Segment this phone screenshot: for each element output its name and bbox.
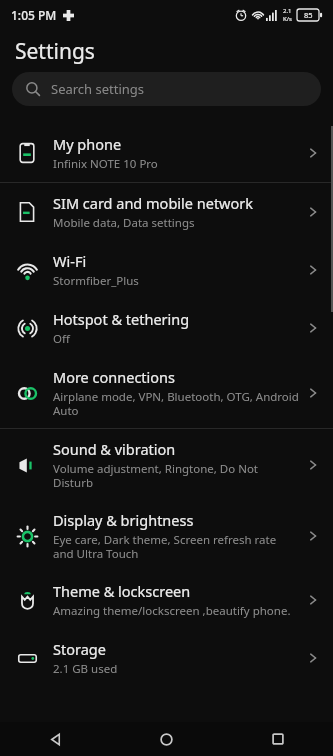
staticText: Hotspot & tethering (53, 309, 190, 329)
staticText: Wi-Fi (53, 251, 87, 271)
button[interactable]: Sound & vibration (0, 429, 333, 500)
staticText: More connections (53, 367, 176, 387)
button[interactable]: Wi-Fi (0, 241, 333, 299)
button[interactable]: SIM card and mobile network (0, 183, 333, 241)
staticText: Sound & vibration (53, 439, 176, 459)
staticText: Airplane mode, VPN, Bluetooth, OTG, Andr… (53, 389, 299, 418)
staticText: Amazing theme/lockscreen ,beautify phone… (53, 603, 291, 619)
button[interactable]: Hotspot & tethering (0, 299, 333, 357)
button[interactable]: Back (0, 722, 111, 756)
button[interactable]: Display & brightness (0, 500, 333, 571)
staticText: 2.1 (283, 7, 292, 15)
button[interactable]: Home (111, 722, 222, 756)
staticText: 1:05 PM (11, 7, 57, 23)
staticText: Volume adjustment, Ringtone, Do Not Dist… (53, 461, 299, 490)
staticText: Display & brightness (53, 510, 194, 530)
staticText: Off (53, 331, 70, 347)
staticText: Eye care, Dark theme, Screen refresh rat… (53, 532, 299, 561)
staticText: Theme & lockscreen (53, 581, 191, 601)
staticText: 85 (304, 10, 313, 20)
staticText: Mobile data, Data settings (53, 215, 195, 231)
button[interactable]: Theme & lockscreen (0, 571, 333, 629)
staticText: Settings (15, 37, 95, 66)
staticText: Search settings (51, 80, 145, 98)
button[interactable]: Search settings (12, 72, 321, 106)
button[interactable]: Storage (0, 629, 333, 687)
button[interactable]: My phone (0, 124, 333, 182)
staticText: My phone (53, 134, 122, 154)
staticText: SIM card and mobile network (53, 193, 254, 213)
staticText: K/s (283, 15, 292, 23)
button[interactable]: More connections (0, 357, 333, 428)
staticText: Storage (53, 639, 106, 659)
staticText: Stormfiber_Plus (53, 273, 139, 289)
staticText: Infinix NOTE 10 Pro (53, 156, 158, 172)
staticText: 2.1 GB used (53, 661, 118, 677)
button[interactable]: Recents (222, 722, 333, 756)
